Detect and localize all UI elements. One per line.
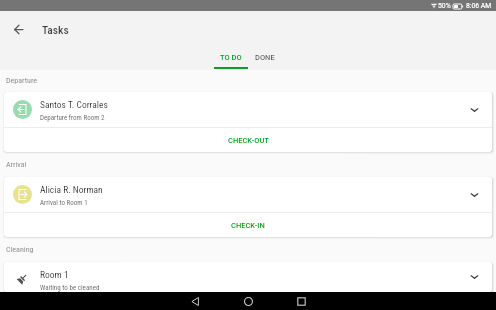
- staticText: Departure: [6, 76, 38, 85]
- button[interactable]: Back: [8, 19, 28, 39]
- staticText: Alicia R. Norman: [40, 184, 103, 195]
- button[interactable]: Alicia R. Norman: [4, 177, 492, 212]
- button[interactable]: Back: [169, 292, 222, 310]
- button[interactable]: Expand: [462, 183, 486, 207]
- staticText: DONE: [255, 53, 275, 62]
- staticText: 50%: [438, 2, 451, 10]
- button[interactable]: Expand: [462, 98, 486, 122]
- staticText: Santos T. Corrales: [40, 99, 108, 110]
- staticText: Waiting to be cleaned: [40, 284, 100, 292]
- staticText: Arrival to Room 1: [40, 199, 88, 207]
- button[interactable]: Recents: [275, 292, 328, 310]
- staticText: Cleaning: [6, 245, 34, 254]
- button[interactable]: TO DO: [211, 47, 251, 68]
- staticText: Arrival: [6, 160, 27, 169]
- staticText: 8:06 AM: [466, 2, 492, 10]
- button[interactable]: Santos T. Corrales: [4, 92, 492, 127]
- button[interactable]: Room 1: [4, 262, 492, 292]
- staticText: Tasks: [42, 23, 69, 36]
- staticText: Departure from Room 2: [40, 114, 105, 122]
- staticText: CHECK-IN: [231, 221, 265, 230]
- button[interactable]: Expand: [462, 265, 486, 289]
- staticText: TO DO: [220, 53, 242, 62]
- staticText: Room 1: [40, 269, 69, 280]
- button[interactable]: CHECK-OUT: [4, 128, 492, 152]
- button[interactable]: CHECK-IN: [4, 213, 492, 237]
- button[interactable]: DONE: [245, 47, 285, 68]
- staticText: CHECK-OUT: [228, 136, 269, 145]
- button[interactable]: Home: [222, 292, 275, 310]
